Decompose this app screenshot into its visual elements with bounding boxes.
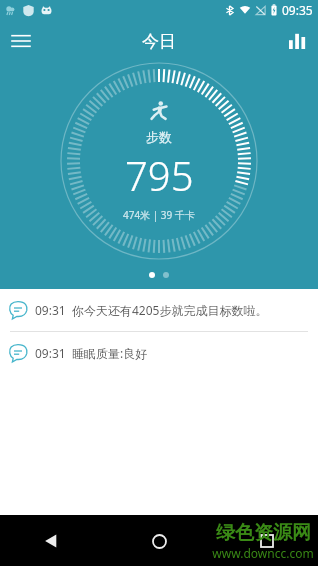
staticText: 睡眠质量:良好 xyxy=(72,345,148,361)
button[interactable]: Home xyxy=(136,518,182,564)
staticText: 绿色资源网 xyxy=(216,521,311,545)
staticText: 795 xyxy=(125,148,194,202)
staticText: 步数 xyxy=(146,129,172,145)
button[interactable]: 09:31 xyxy=(0,332,318,374)
staticText: 今日 xyxy=(142,31,176,52)
button[interactable]: Recent apps xyxy=(244,518,290,564)
staticText: 474米 | 39 千卡 xyxy=(123,208,195,222)
button[interactable]: Step count dial xyxy=(60,62,258,260)
button[interactable]: Back xyxy=(28,518,74,564)
staticText: www.downcc.com xyxy=(212,545,314,561)
button[interactable]: Menu xyxy=(0,20,42,62)
button[interactable]: 09:31 xyxy=(0,289,318,331)
staticText: 09:31 xyxy=(35,302,66,318)
button[interactable]: Statistics xyxy=(276,20,318,62)
staticText: 09:35 xyxy=(282,2,313,18)
staticText: 你今天还有4205步就完成目标数啦。 xyxy=(72,302,268,318)
staticText: 09:31 xyxy=(35,345,66,361)
